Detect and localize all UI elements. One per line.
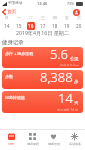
button[interactable]: 健康管理 xyxy=(43,129,64,150)
staticText: 19 xyxy=(64,23,70,29)
button[interactable]: 18 xyxy=(49,22,61,30)
button[interactable]: 16 xyxy=(25,22,37,30)
staticText: 16 xyxy=(28,23,34,29)
staticText: 步数 xyxy=(5,74,13,79)
staticText: 目标 8.0 公里 xyxy=(60,64,79,66)
button[interactable]: 步数 xyxy=(2,70,83,89)
button[interactable]: Profile xyxy=(73,9,80,16)
staticText: 首页 xyxy=(7,9,17,15)
staticText: 三 xyxy=(41,15,45,20)
staticText: 日 xyxy=(5,15,9,20)
staticText: 健身记录 xyxy=(2,39,24,46)
staticText: 2019年4月16日 星期二 xyxy=(16,29,70,36)
button[interactable]: 19 xyxy=(61,22,73,30)
staticText: 步行 + 跑步里程 xyxy=(5,51,34,56)
staticText: 五 xyxy=(65,15,69,20)
staticText: 8,388 xyxy=(40,70,73,86)
staticText: 公里 xyxy=(70,56,79,61)
button[interactable]: 14 xyxy=(0,22,13,30)
staticText: 记录 xyxy=(8,142,14,146)
button[interactable]: 已坚持锻炼 xyxy=(2,91,83,113)
button[interactable]: 健身课程 xyxy=(22,129,43,150)
staticText: 运动装备 xyxy=(69,142,81,146)
staticText: 18 xyxy=(52,23,58,29)
staticText: 健康管理 xyxy=(48,142,60,146)
staticText: 5.6 xyxy=(50,47,69,63)
staticText: 中国移动 xyxy=(8,1,23,6)
staticText: 六 xyxy=(77,15,81,20)
button[interactable]: 15 xyxy=(13,22,25,30)
staticText: 一 xyxy=(17,15,21,20)
staticText: 健身课程 xyxy=(27,142,39,146)
staticText: 14 xyxy=(4,23,10,29)
staticText: 步 xyxy=(74,79,79,84)
staticText: 四 xyxy=(53,15,57,20)
staticText: 13:46 xyxy=(37,1,48,6)
staticText: 天 xyxy=(74,100,79,105)
staticText: 20 xyxy=(76,23,82,29)
staticText: 已坚持锻炼 xyxy=(5,95,25,100)
button[interactable]: 17 xyxy=(37,22,49,30)
button[interactable]: 20 xyxy=(73,22,85,30)
staticText: 14 xyxy=(58,91,73,107)
button[interactable]: 首页 xyxy=(2,9,17,15)
staticText: 15 xyxy=(16,23,22,29)
staticText: 二 xyxy=(29,15,33,20)
button[interactable]: 运动装备 xyxy=(64,129,85,150)
staticText: 17 xyxy=(40,23,46,29)
staticText: 73% xyxy=(67,1,75,6)
button[interactable]: 步行 + 跑步里程 xyxy=(2,47,83,68)
staticText: 本月累计 14 天 xyxy=(57,108,79,111)
button[interactable]: 记录 xyxy=(0,129,22,150)
